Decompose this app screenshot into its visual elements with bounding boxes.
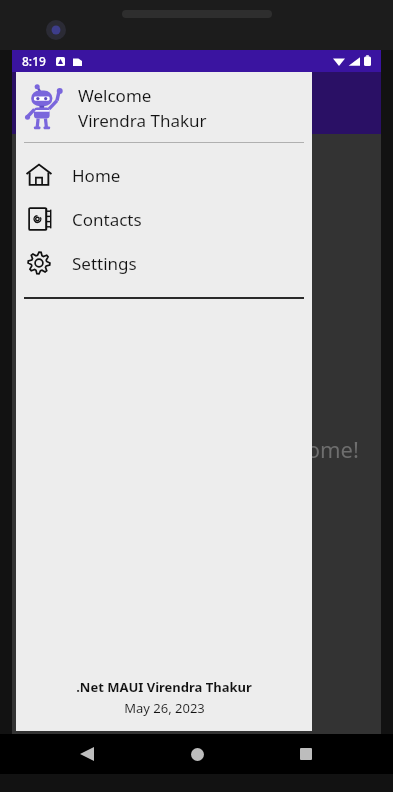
staticText: Virendra Thakur <box>78 109 207 132</box>
staticText: Welcome <box>78 84 152 107</box>
button[interactable]: Home <box>16 153 312 197</box>
staticText: Settings <box>72 252 137 275</box>
button[interactable]: Settings <box>16 241 312 285</box>
button[interactable]: Back <box>70 737 104 771</box>
button[interactable]: Contacts <box>16 197 312 241</box>
staticText: Welcome! <box>258 434 359 464</box>
staticText: .Net MAUI Virendra Thakur <box>76 678 252 696</box>
button[interactable]: Recent apps <box>289 737 323 771</box>
button[interactable]: Home <box>180 737 214 771</box>
staticText: May 26, 2023 <box>124 699 205 717</box>
staticText: Home <box>72 164 121 187</box>
staticText: Contacts <box>72 208 142 231</box>
staticText: 8:19 <box>22 53 46 69</box>
